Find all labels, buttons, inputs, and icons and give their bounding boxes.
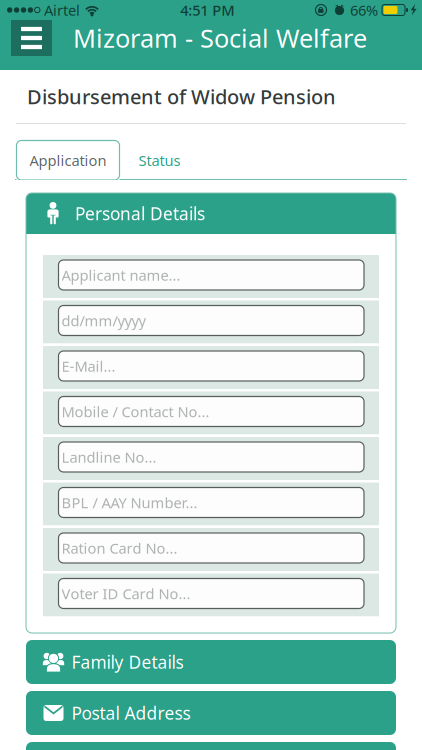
staticText: Airtel [44, 0, 80, 20]
staticText: Family Details [71, 650, 183, 673]
staticText: BPL / AAY Number... [61, 493, 197, 512]
staticText: Disbursement of Widow Pension [27, 83, 336, 110]
button[interactable]: Applicant name... [43, 255, 379, 298]
staticText: Applicant name... [61, 265, 180, 285]
staticText: dd/mm/yyyy [61, 311, 145, 330]
button[interactable]: Voter ID Card No... [43, 573, 379, 616]
staticText: Status [138, 150, 180, 170]
staticText: 4:51 PM [180, 0, 234, 20]
button[interactable]: Postal Address [26, 691, 396, 735]
staticText: E-Mail... [61, 356, 115, 376]
button[interactable]: Ration Card No... [43, 528, 379, 571]
button[interactable]: Menu [11, 20, 52, 56]
staticText: Landline No... [61, 447, 156, 467]
staticText: Mizoram - Social Welfare [73, 21, 367, 55]
button[interactable]: BPL / AAY Number... [43, 482, 379, 525]
button[interactable]: Application [16, 140, 119, 180]
button[interactable]: E-Mail... [43, 346, 379, 389]
staticText: Postal Address [71, 701, 190, 724]
button[interactable]: Landline No... [43, 437, 379, 480]
staticText: Ration Card No... [61, 538, 177, 558]
staticText: Mobile / Contact No... [61, 402, 209, 421]
button[interactable]: Family Details [26, 640, 396, 684]
staticText: Personal Details [75, 202, 205, 225]
button[interactable]: Mobile / Contact No... [43, 391, 379, 434]
button[interactable]: Status [119, 140, 199, 180]
button[interactable]: dd/mm/yyyy [43, 300, 379, 343]
button[interactable]: Bank Details [26, 742, 396, 750]
staticText: Voter ID Card No... [61, 584, 190, 603]
staticText: Application [29, 150, 106, 170]
staticText: 66% [350, 0, 378, 20]
